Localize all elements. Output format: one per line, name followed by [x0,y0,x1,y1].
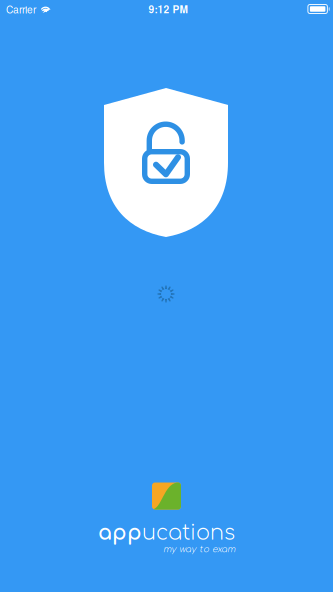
staticText: 9:12 PM [148,2,187,16]
staticText: Carrier [6,2,36,16]
staticText: ucations [142,522,235,545]
staticText: app [98,522,142,545]
staticText: my way to exam [163,545,235,554]
